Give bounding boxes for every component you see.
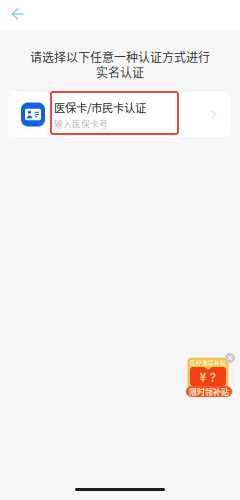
staticText: 限时领补贴 <box>189 386 229 397</box>
button[interactable]: Back <box>3 1 33 27</box>
button[interactable]: 医保卡/市民卡认证 <box>8 92 231 137</box>
staticText: 实名认证 <box>96 63 144 81</box>
button[interactable]: Close promotion <box>223 351 237 365</box>
staticText: 请选择以下任意一种认证方式进行 <box>30 48 210 65</box>
staticText: ¥ ? <box>199 370 216 385</box>
staticText: 医保卡/市民卡认证 <box>54 99 146 115</box>
staticText: 医疗惠民补贴 <box>190 358 226 367</box>
button[interactable]: 医疗惠民补贴 <box>185 352 235 398</box>
staticText: 输入医保卡号 <box>54 117 108 130</box>
